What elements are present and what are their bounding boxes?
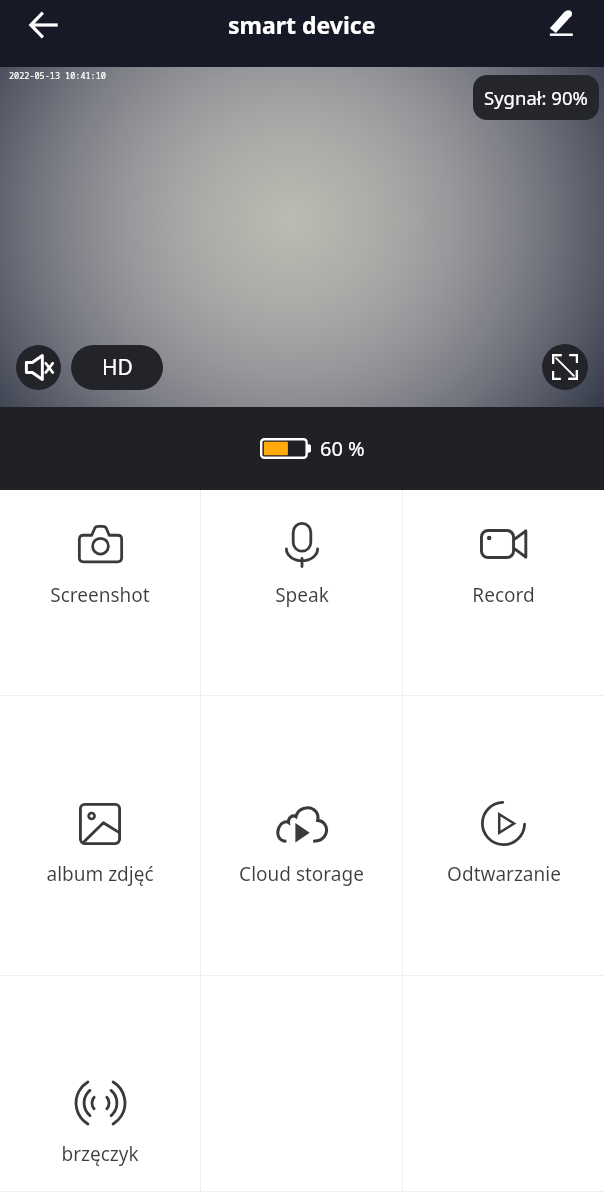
button[interactable]: Mute — [16, 345, 61, 390]
staticText: brzęczyk — [61, 1141, 139, 1167]
staticText: Odtwarzanie — [447, 861, 561, 887]
staticText: Cloud storage — [239, 861, 364, 887]
staticText: 2022-05-13 10:41:10 — [9, 70, 106, 82]
button[interactable]: Record — [403, 490, 604, 695]
button[interactable]: Odtwarzanie — [403, 696, 604, 975]
staticText: smart device — [228, 9, 376, 40]
button[interactable]: Screenshot — [0, 490, 200, 695]
staticText: Sygnał: 90% — [484, 85, 588, 110]
button[interactable]: Sygnał: 90% — [473, 75, 599, 120]
staticText: album zdjęć — [46, 861, 154, 887]
button[interactable]: Edit — [537, 0, 586, 49]
staticText: 60 % — [320, 435, 365, 462]
staticText: Screenshot — [50, 582, 150, 608]
button[interactable]: Fullscreen — [542, 344, 588, 390]
button[interactable]: Cloud storage — [201, 696, 402, 975]
button[interactable]: HD — [71, 345, 163, 390]
staticText: Speak — [275, 582, 329, 608]
button[interactable]: brzęczyk — [0, 976, 200, 1191]
button[interactable]: album zdjęć — [0, 696, 200, 975]
button[interactable]: Back — [19, 0, 68, 49]
staticText: HD — [102, 353, 133, 382]
button[interactable]: Speak — [201, 490, 402, 695]
staticText: Record — [472, 582, 535, 608]
